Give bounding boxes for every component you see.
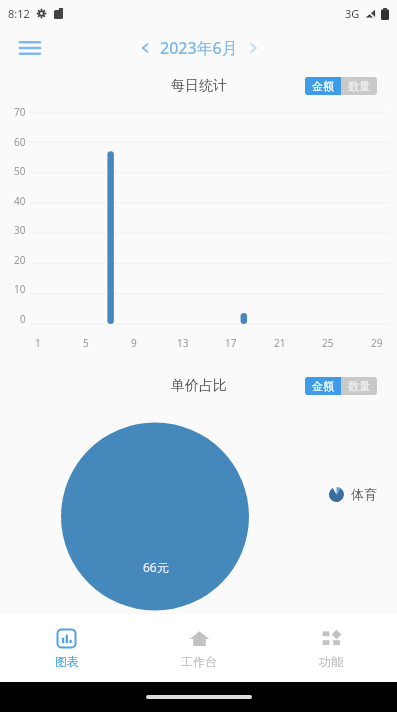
staticText: 17 xyxy=(225,336,237,350)
button[interactable]: 数量 xyxy=(341,377,377,395)
staticText: 9 xyxy=(131,336,137,350)
button[interactable]: 功能 xyxy=(265,614,397,682)
staticText: 2023年6月 xyxy=(160,37,238,59)
staticText: 1 xyxy=(35,336,41,350)
other: Next month xyxy=(246,41,260,55)
button[interactable]: 图表 xyxy=(0,614,133,682)
staticText: 3G xyxy=(345,6,360,21)
staticText: 13 xyxy=(177,336,189,350)
button[interactable]: Menu xyxy=(12,30,48,66)
button[interactable]: 金额 xyxy=(305,377,341,395)
button[interactable]: 体育 xyxy=(329,486,377,502)
staticText: 29 xyxy=(371,336,383,350)
staticText: 功能 xyxy=(319,654,343,669)
staticText: 数量 xyxy=(348,79,370,93)
staticText: 40 xyxy=(14,194,26,207)
staticText: 21 xyxy=(274,336,286,350)
staticText: 8:12 xyxy=(8,6,30,21)
staticText: 金额 xyxy=(312,79,334,93)
staticText: 0 xyxy=(20,312,26,325)
staticText: 单价占比 xyxy=(171,377,227,395)
staticText: 30 xyxy=(14,223,26,236)
staticText: 工作台 xyxy=(181,654,217,669)
staticText: 20 xyxy=(14,253,26,266)
button[interactable]: Previous month xyxy=(138,37,260,59)
staticText: 10 xyxy=(14,282,26,295)
staticText: 数量 xyxy=(348,379,370,393)
staticText: 66元 xyxy=(143,559,169,575)
staticText: 图表 xyxy=(55,654,79,669)
other: Previous month xyxy=(138,41,152,55)
button[interactable]: 工作台 xyxy=(133,614,265,682)
staticText: 体育 xyxy=(351,486,377,502)
staticText: 金额 xyxy=(312,379,334,393)
staticText: 每日统计 xyxy=(171,77,227,95)
staticText: 70 xyxy=(14,105,26,118)
staticText: 25 xyxy=(322,336,334,350)
staticText: 5 xyxy=(83,336,89,350)
button[interactable]: 金额 xyxy=(305,77,341,95)
staticText: 60 xyxy=(14,135,26,148)
button[interactable]: 数量 xyxy=(341,77,377,95)
staticText: 50 xyxy=(14,164,26,177)
